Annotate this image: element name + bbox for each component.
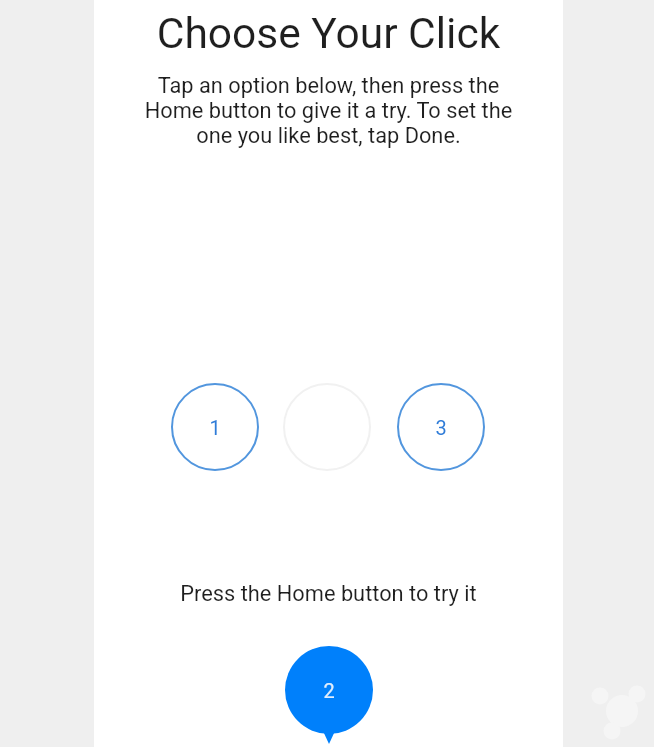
staticText: 3 <box>435 416 447 439</box>
staticText: 1 <box>209 416 221 439</box>
staticText: Choose Your Click <box>94 9 563 59</box>
staticText: 2 <box>323 679 335 702</box>
button[interactable]: Click option 2 <box>283 383 371 471</box>
button[interactable]: Click option 3 <box>397 383 485 471</box>
staticText: Press the Home button to try it <box>94 581 563 607</box>
button[interactable]: Selected click option 2 <box>279 646 379 747</box>
staticText: Tap an option below, then press the Home… <box>94 73 563 148</box>
button[interactable]: Click option 1 <box>171 383 259 471</box>
